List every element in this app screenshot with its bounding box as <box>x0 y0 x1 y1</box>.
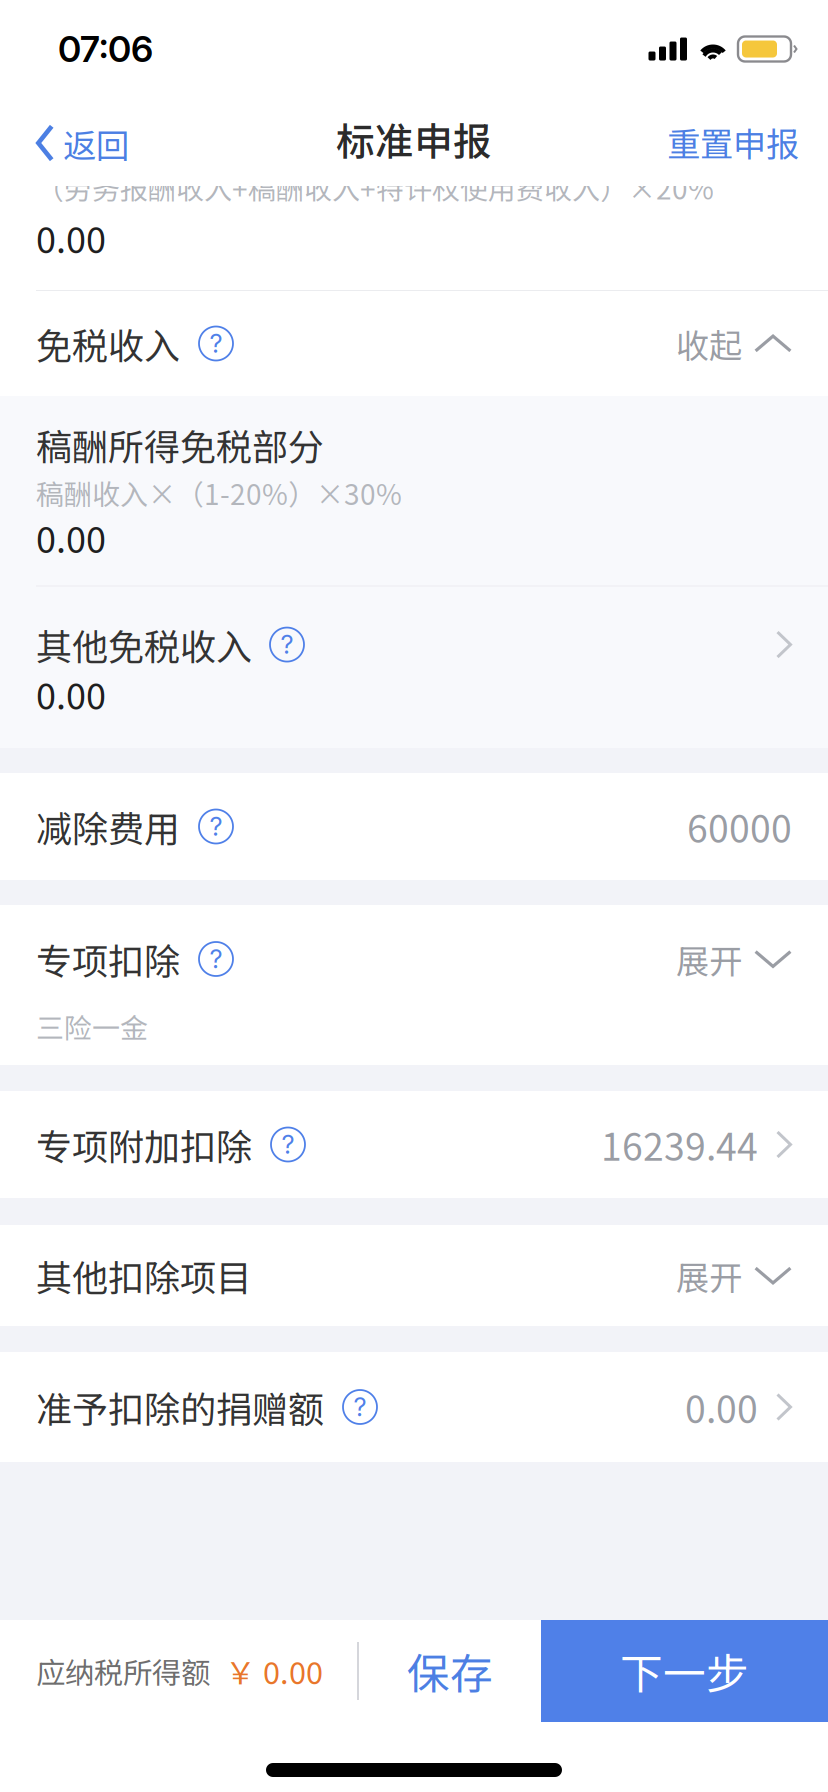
button[interactable]: 返回 <box>0 92 159 186</box>
staticText: （劳务报酬收入+稿酬收入+特许权使用费收入）×20% <box>36 167 714 207</box>
staticText: 0.00 <box>685 1380 758 1434</box>
button[interactable]: 其他扣除项目 <box>0 1225 828 1326</box>
staticText: 展开 <box>676 935 742 983</box>
staticText: ? <box>209 944 222 974</box>
staticText: 三险一金 <box>36 1006 148 1046</box>
staticText: ? <box>281 1129 294 1160</box>
staticText: 07:06 <box>58 27 153 71</box>
staticText: 展开 <box>676 1251 742 1300</box>
staticText: 0.00 <box>36 211 106 264</box>
staticText: ? <box>353 1392 366 1422</box>
staticText: 60000 <box>687 799 792 854</box>
button[interactable]: 保存 <box>359 1620 541 1722</box>
staticText: ? <box>209 328 222 359</box>
staticText: ? <box>280 629 293 660</box>
button[interactable]: 下一步 <box>541 1620 828 1722</box>
staticText: 0.00 <box>36 668 106 720</box>
button[interactable]: 专项附加扣除 <box>0 1091 828 1198</box>
button[interactable]: 准予扣除的捐赠额 <box>0 1352 828 1462</box>
staticText: 其他免税收入 <box>36 618 252 671</box>
staticText: 应纳税所得额 <box>36 1650 210 1692</box>
staticText: 下一步 <box>620 1640 749 1702</box>
staticText: ￥ 0.00 <box>225 1649 323 1693</box>
staticText: 准予扣除的捐赠额 <box>36 1381 324 1433</box>
staticText: 16239.44 <box>601 1117 758 1172</box>
staticText: 0.00 <box>36 511 106 563</box>
button[interactable]: 免税收入 <box>0 291 828 396</box>
staticText: 收起 <box>676 319 742 368</box>
staticText: 稿酬收入×（1-20%）×30% <box>36 473 402 513</box>
staticText: 返回 <box>63 119 129 168</box>
button[interactable]: 重置申报 <box>637 92 828 186</box>
staticText: 标准申报 <box>336 111 492 167</box>
button[interactable]: 减除费用 <box>0 773 828 880</box>
staticText: 重置申报 <box>667 118 799 166</box>
button[interactable]: 专项扣除 <box>0 905 828 1065</box>
button[interactable]: 其他免税收入 <box>0 586 828 747</box>
staticText: 免税收入 <box>36 317 180 369</box>
staticText: 专项附加扣除 <box>36 1118 252 1170</box>
staticText: 专项扣除 <box>36 933 180 985</box>
staticText: 保存 <box>407 1640 493 1702</box>
staticText: 减除费用 <box>36 800 180 852</box>
staticText: 其他扣除项目 <box>36 1249 252 1301</box>
staticText: ? <box>209 811 222 842</box>
staticText: 稿酬所得免税部分 <box>36 418 324 471</box>
